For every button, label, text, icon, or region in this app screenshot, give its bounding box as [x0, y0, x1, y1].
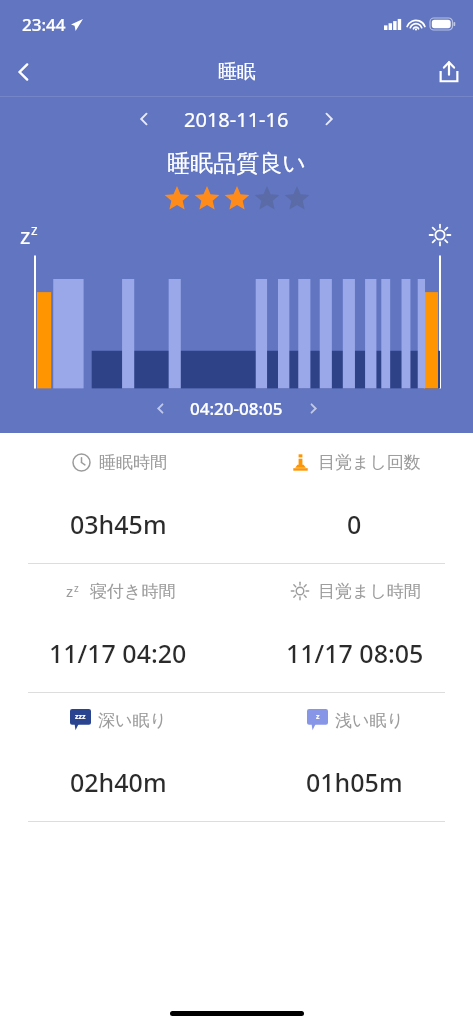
staticText: z — [66, 581, 74, 601]
staticText: 2018-11-16 — [184, 106, 289, 133]
staticText: z — [20, 220, 31, 250]
staticText: 01h05m — [306, 765, 403, 799]
button[interactable]: Share — [425, 48, 473, 96]
button[interactable]: zzz — [0, 709, 236, 799]
staticText: 寝付き時間 — [90, 581, 176, 602]
staticText: 浅い眠り — [335, 710, 404, 731]
staticText: 11/17 04:20 — [49, 636, 187, 670]
staticText: 11/17 08:05 — [286, 636, 424, 670]
button[interactable]: Previous day — [126, 101, 162, 137]
staticText: 目覚まし回数 — [318, 452, 421, 473]
staticText: z — [74, 581, 79, 595]
staticText: 23:44 — [22, 13, 66, 36]
button[interactable]: 睡眠時間 — [0, 451, 236, 541]
staticText: zzz — [75, 712, 86, 722]
button[interactable]: 目覚まし時間 — [236, 580, 473, 670]
button[interactable]: z — [0, 580, 236, 670]
staticText: 02h40m — [70, 765, 167, 799]
staticText: 睡眠 — [218, 60, 256, 84]
button[interactable]: Next range — [297, 392, 329, 424]
button[interactable]: Back — [0, 48, 48, 96]
staticText: 睡眠時間 — [99, 452, 167, 473]
staticText: z — [31, 220, 38, 239]
button[interactable]: z — [236, 709, 473, 799]
button[interactable]: Next day — [311, 101, 347, 137]
staticText: 目覚まし時間 — [318, 581, 421, 602]
staticText: 0 — [347, 507, 362, 541]
button[interactable]: 目覚まし回数 — [236, 451, 473, 541]
staticText: 深い眠り — [98, 710, 167, 731]
staticText: 04:20-08:05 — [190, 397, 283, 420]
button[interactable]: Previous range — [144, 392, 176, 424]
staticText: z — [316, 712, 320, 722]
staticText: 睡眠品質良い — [0, 149, 473, 178]
staticText: 03h45m — [70, 507, 167, 541]
